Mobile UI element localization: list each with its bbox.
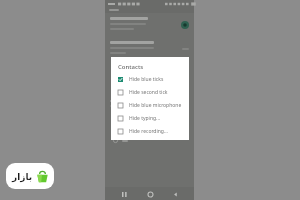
button[interactable]: Home	[144, 188, 156, 200]
button[interactable]: Hide recording...	[118, 128, 184, 135]
button[interactable]: Hide typing...	[118, 115, 184, 122]
staticText: Hide typing...	[129, 115, 161, 122]
button[interactable]	[105, 138, 194, 143]
staticText: بازار	[12, 172, 33, 182]
button[interactable]: Toggle	[181, 21, 189, 29]
button[interactable]	[105, 126, 194, 131]
button[interactable]: Toggle	[105, 17, 194, 33]
staticText: Hide recording...	[129, 128, 168, 135]
button[interactable]: Back	[169, 188, 181, 200]
button[interactable]: Bazaar	[6, 163, 54, 189]
staticText: Contacts	[118, 63, 144, 71]
staticText: Hide blue microphone	[129, 102, 182, 109]
staticText: Hide blue ticks	[129, 76, 164, 83]
button[interactable]	[105, 114, 194, 119]
button[interactable]: Hide blue microphone	[118, 102, 184, 109]
button[interactable]: Hide second tick	[118, 89, 184, 96]
button[interactable]: Hide blue ticks	[118, 76, 184, 83]
button[interactable]: Recents	[118, 188, 130, 200]
button[interactable]	[105, 41, 194, 57]
staticText: Hide second tick	[129, 89, 168, 96]
